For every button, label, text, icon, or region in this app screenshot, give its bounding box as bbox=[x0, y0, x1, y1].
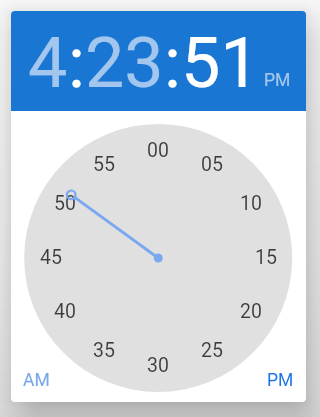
staticText: 40 bbox=[54, 300, 76, 323]
staticText: 50 bbox=[54, 192, 76, 215]
staticText: : bbox=[68, 22, 85, 104]
button[interactable]: 51 bbox=[181, 22, 260, 104]
staticText: 35 bbox=[93, 339, 115, 362]
staticText: 25 bbox=[201, 339, 223, 362]
staticText: 20 bbox=[240, 300, 262, 323]
staticText: 05 bbox=[201, 153, 223, 176]
button[interactable]: AM bbox=[23, 370, 50, 391]
button[interactable]: 45 bbox=[31, 245, 71, 269]
button[interactable]: 4 bbox=[28, 22, 68, 104]
button[interactable]: 05 bbox=[192, 152, 232, 176]
button[interactable]: 55 bbox=[84, 152, 124, 176]
button[interactable]: 10 bbox=[231, 191, 271, 215]
staticText: 45 bbox=[40, 246, 62, 269]
staticText: 00 bbox=[147, 139, 169, 162]
button[interactable]: PM bbox=[267, 370, 294, 391]
button[interactable]: 23 bbox=[85, 22, 164, 104]
staticText: PM bbox=[264, 70, 291, 91]
staticText: 55 bbox=[93, 153, 115, 176]
button[interactable]: 20 bbox=[231, 299, 271, 323]
staticText: 30 bbox=[147, 354, 169, 377]
button[interactable]: 00 bbox=[138, 138, 178, 162]
button[interactable]: 25 bbox=[192, 338, 232, 362]
staticText: 10 bbox=[240, 192, 262, 215]
staticText: 15 bbox=[255, 246, 277, 269]
button[interactable]: 40 bbox=[45, 299, 85, 323]
button[interactable]: 30 bbox=[138, 353, 178, 377]
button[interactable]: 15 bbox=[246, 245, 286, 269]
button[interactable]: 50 bbox=[45, 191, 85, 215]
staticText: : bbox=[164, 22, 181, 104]
button[interactable]: 35 bbox=[84, 338, 124, 362]
